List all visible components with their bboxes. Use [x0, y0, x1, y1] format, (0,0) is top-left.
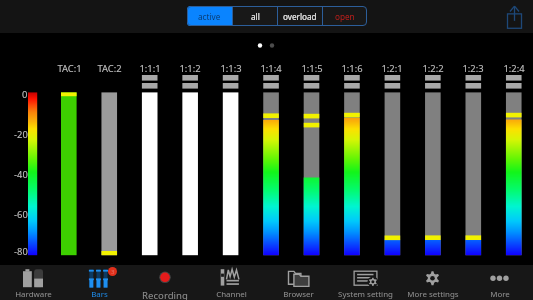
staticText: Recording — [142, 289, 188, 300]
staticText: 0 — [22, 88, 28, 99]
staticText: Browser — [283, 289, 314, 300]
staticText: 1:1:3 — [220, 62, 242, 73]
button[interactable]: Hardware — [0, 265, 66, 300]
staticText: -60 — [14, 208, 28, 219]
button[interactable]: Browser — [265, 265, 332, 300]
staticText: Bars — [91, 289, 108, 300]
button[interactable]: Channel — [198, 265, 265, 300]
staticText: 1:2:2 — [422, 62, 444, 73]
staticText: Channel — [216, 289, 247, 300]
staticText: System setting — [338, 289, 393, 300]
staticText: open — [335, 11, 355, 22]
staticText: overload — [283, 11, 317, 22]
staticText: 1:1:5 — [301, 62, 323, 73]
staticText: TAC:1 — [57, 62, 82, 73]
staticText: 1:1:1 — [139, 62, 161, 73]
button[interactable]: open — [323, 6, 367, 26]
staticText: More — [490, 289, 510, 300]
staticText: 3 — [111, 268, 115, 276]
staticText: -40 — [14, 168, 28, 179]
staticText: 1:1:6 — [341, 62, 363, 73]
staticText: 1:2:1 — [381, 62, 403, 73]
staticText: 1:1:4 — [260, 62, 282, 73]
staticText: Hardware — [15, 289, 52, 300]
staticText: -80 — [14, 245, 28, 256]
button[interactable]: all — [233, 6, 277, 26]
staticText: -20 — [14, 128, 28, 139]
button[interactable]: System setting — [332, 265, 399, 300]
staticText: 1:2:3 — [462, 62, 484, 73]
button[interactable]: More — [466, 265, 533, 300]
staticText: TAC:2 — [97, 62, 122, 73]
staticText: 1:2:4 — [503, 62, 525, 73]
staticText: active — [198, 11, 221, 22]
button[interactable]: More settings — [399, 265, 466, 300]
button[interactable]: active — [187, 6, 232, 26]
button[interactable]: Share — [497, 0, 531, 33]
button[interactable]: Bars — [66, 265, 132, 300]
button[interactable]: Recording — [132, 265, 198, 300]
staticText: 1:1:2 — [179, 62, 201, 73]
staticText: all — [251, 11, 260, 22]
staticText: More settings — [407, 289, 459, 300]
button[interactable]: overload — [278, 6, 322, 26]
